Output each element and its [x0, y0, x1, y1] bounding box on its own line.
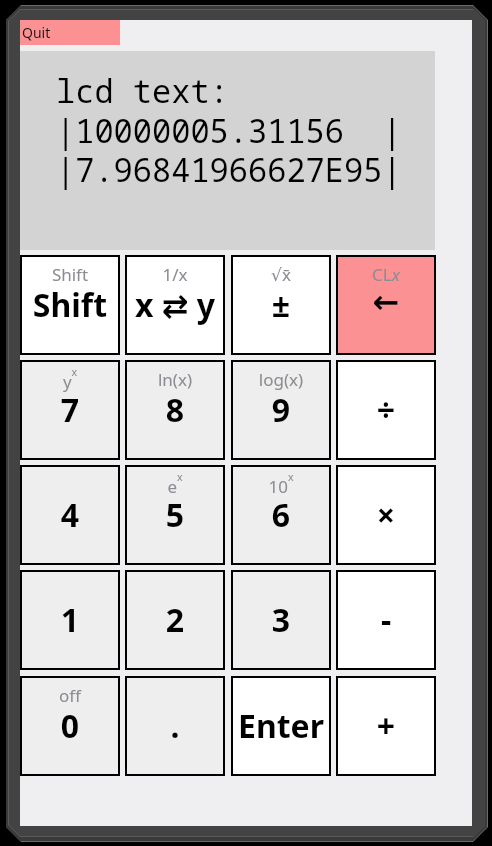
staticText: x ⇄ y — [125, 283, 225, 327]
staticText: Shift — [20, 283, 120, 327]
button[interactable]: × — [336, 465, 436, 565]
staticText: 8 — [125, 388, 225, 432]
button[interactable]: √x̄ — [231, 255, 331, 355]
staticText: ± — [231, 283, 331, 327]
staticText: × — [336, 493, 436, 537]
button[interactable]: 1/x — [125, 255, 225, 355]
staticText: Enter — [231, 704, 331, 748]
button[interactable]: . — [125, 676, 225, 776]
button[interactable]: ln(x) — [125, 360, 225, 460]
staticText: 7 — [20, 388, 120, 432]
staticText: √x̄ — [231, 263, 331, 286]
staticText: ÷ — [336, 388, 436, 432]
button[interactable]: Quit — [20, 20, 120, 45]
staticText: 1/x — [125, 263, 225, 286]
staticText: CLx — [336, 263, 436, 286]
button[interactable]: ÷ — [336, 360, 436, 460]
staticText: . — [125, 704, 225, 748]
button[interactable]: CLx — [336, 255, 436, 355]
button[interactable]: 1 — [20, 570, 120, 670]
button[interactable]: - — [336, 570, 436, 670]
staticText: off — [20, 684, 120, 707]
staticText: + — [336, 704, 436, 748]
staticText: ln(x) — [125, 368, 225, 391]
button[interactable]: log(x) — [231, 360, 331, 460]
staticText: 10x — [231, 470, 331, 498]
staticText: 1 — [20, 598, 120, 642]
button[interactable]: off — [20, 676, 120, 776]
button[interactable]: 4 — [20, 465, 120, 565]
staticText: ← — [336, 283, 436, 320]
staticText: Shift — [20, 263, 120, 286]
staticText: 4 — [20, 493, 120, 537]
button[interactable]: 2 — [125, 570, 225, 670]
staticText: 0 — [20, 704, 120, 748]
button[interactable]: yx — [20, 360, 120, 460]
staticText: Quit — [22, 23, 51, 42]
button[interactable]: 10x — [231, 465, 331, 565]
staticText: yx — [20, 365, 120, 393]
staticText: ex — [125, 470, 225, 498]
staticText: 3 — [231, 598, 331, 642]
button[interactable]: + — [336, 676, 436, 776]
staticText: log(x) — [231, 368, 331, 391]
button[interactable]: Enter — [231, 676, 331, 776]
staticText: 2 — [125, 598, 225, 642]
staticText: 5 — [125, 493, 225, 537]
button[interactable]: 3 — [231, 570, 331, 670]
staticText: lcd text: |10000005.31156 | |7.968419666… — [56, 69, 402, 191]
button[interactable]: ex — [125, 465, 225, 565]
staticText: 9 — [231, 388, 331, 432]
staticText: - — [336, 598, 436, 642]
staticText: 6 — [231, 493, 331, 537]
button[interactable]: Shift — [20, 255, 120, 355]
